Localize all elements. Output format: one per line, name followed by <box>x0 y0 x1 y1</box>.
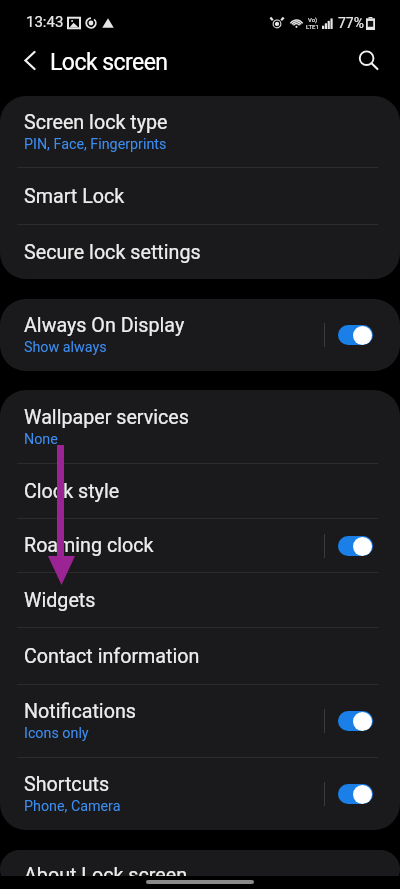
button[interactable]: Toggle <box>338 784 373 804</box>
button[interactable]: Screen lock type <box>0 96 400 167</box>
button[interactable]: Shortcuts <box>0 758 400 830</box>
staticText: 77% <box>338 15 364 31</box>
button[interactable]: Smart Lock <box>0 168 400 224</box>
button[interactable]: Secure lock settings <box>0 225 400 279</box>
staticText: LTE1 <box>306 23 319 30</box>
button[interactable]: Navigate up <box>9 45 51 75</box>
button[interactable]: Always On Display <box>0 299 400 371</box>
staticText: Secure lock settings <box>24 241 201 264</box>
staticText: 13:43 <box>26 13 64 31</box>
button[interactable]: Search <box>353 45 383 75</box>
staticText: Vo) <box>308 16 318 23</box>
button[interactable]: Roaming clock <box>0 519 400 572</box>
button[interactable]: Wallpaper services <box>0 390 400 463</box>
button[interactable]: Toggle <box>338 325 373 345</box>
button[interactable]: Widgets <box>0 573 400 627</box>
staticText: Phone, Camera <box>24 798 121 815</box>
button[interactable]: Notifications <box>0 685 400 757</box>
staticText: Wallpaper services <box>24 406 189 429</box>
staticText: Shortcuts <box>24 773 110 796</box>
staticText: Contact information <box>24 645 200 668</box>
staticText: Clock style <box>24 480 120 503</box>
staticText: About Lock screen <box>24 864 188 887</box>
staticText: PIN, Face, Fingerprints <box>24 136 167 153</box>
staticText: Lock screen <box>50 49 168 75</box>
button[interactable]: Toggle <box>338 536 373 556</box>
staticText: Notifications <box>24 700 136 723</box>
button[interactable]: Contact information <box>0 628 400 684</box>
button[interactable]: Clock style <box>0 464 400 518</box>
staticText: None <box>24 431 58 448</box>
button[interactable]: Toggle <box>338 711 373 731</box>
staticText: Screen lock type <box>24 111 168 134</box>
staticText: Icons only <box>24 725 89 742</box>
staticText: Widgets <box>24 589 96 612</box>
button[interactable]: About Lock screen <box>0 850 400 889</box>
staticText: Always On Display <box>24 314 185 337</box>
staticText: Smart Lock <box>24 185 125 208</box>
staticText: Roaming clock <box>24 534 154 557</box>
staticText: Show always <box>24 339 107 356</box>
